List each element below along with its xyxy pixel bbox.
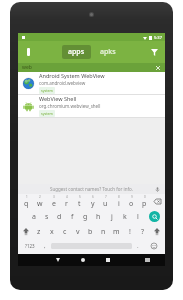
staticText: r bbox=[65, 199, 68, 209]
button[interactable]: 9 bbox=[125, 194, 138, 209]
staticText: org.chromium.webview_shell bbox=[39, 103, 101, 109]
staticText: e bbox=[52, 199, 56, 209]
button[interactable]: Voice input bbox=[153, 185, 161, 193]
button[interactable]: apks bbox=[94, 45, 122, 59]
staticText: t bbox=[78, 199, 81, 209]
button[interactable]: Clear search bbox=[154, 64, 162, 72]
button[interactable]: k bbox=[118, 209, 131, 224]
staticText: apps bbox=[68, 47, 85, 57]
staticText: f bbox=[71, 212, 74, 222]
button[interactable]: f bbox=[66, 209, 79, 224]
button[interactable]: Keyboard bbox=[135, 254, 160, 266]
staticText: j bbox=[111, 212, 113, 222]
button[interactable]: m bbox=[110, 224, 123, 239]
staticText: p bbox=[142, 199, 147, 209]
staticText: v bbox=[76, 227, 80, 237]
button[interactable]: WebView Shell bbox=[18, 95, 165, 117]
button[interactable]: x bbox=[45, 224, 58, 239]
staticText: o bbox=[129, 199, 134, 209]
staticText: WebView Shell bbox=[39, 95, 77, 102]
button[interactable]: , bbox=[39, 239, 51, 253]
button[interactable]: . bbox=[132, 239, 144, 253]
button[interactable]: n bbox=[97, 224, 110, 239]
staticText: c bbox=[63, 227, 67, 237]
staticText: s bbox=[45, 212, 49, 222]
button[interactable]: 5 bbox=[73, 194, 86, 209]
button[interactable]: ? bbox=[136, 224, 149, 239]
button[interactable]: l bbox=[131, 209, 144, 224]
staticText: w bbox=[37, 199, 43, 209]
button[interactable]: Search bbox=[145, 210, 163, 223]
button[interactable]: d bbox=[53, 209, 66, 224]
button[interactable]: 4 bbox=[60, 194, 73, 209]
button[interactable]: Shift bbox=[19, 224, 33, 239]
staticText: 5 bbox=[79, 195, 81, 199]
button[interactable]: Android System WebView bbox=[18, 72, 165, 94]
staticText: l bbox=[137, 212, 139, 222]
button[interactable]: 7 bbox=[99, 194, 112, 209]
button[interactable]: apps bbox=[62, 45, 91, 59]
button[interactable]: v bbox=[71, 224, 84, 239]
button[interactable]: Shift bbox=[149, 224, 164, 239]
button[interactable]: 3 bbox=[47, 194, 60, 209]
staticText: m bbox=[113, 227, 120, 237]
button[interactable]: Filter bbox=[147, 45, 161, 59]
staticText: x bbox=[50, 227, 54, 237]
button[interactable]: z bbox=[33, 224, 45, 239]
button[interactable]: b bbox=[84, 224, 97, 239]
staticText: . bbox=[137, 242, 139, 250]
staticText: 2 bbox=[39, 195, 41, 199]
button[interactable]: s bbox=[40, 209, 53, 224]
staticText: u bbox=[103, 199, 108, 209]
button[interactable]: 6 bbox=[86, 194, 99, 209]
staticText: g bbox=[83, 212, 88, 222]
staticText: i bbox=[118, 199, 120, 209]
button[interactable]: j bbox=[105, 209, 118, 224]
staticText: 9 bbox=[131, 195, 133, 199]
staticText: b bbox=[88, 227, 93, 237]
staticText: q bbox=[24, 199, 29, 209]
button[interactable]: ! bbox=[123, 224, 136, 239]
staticText: system bbox=[41, 111, 53, 116]
staticText: z bbox=[37, 227, 41, 237]
staticText: 1 bbox=[26, 195, 28, 199]
button[interactable]: c bbox=[58, 224, 71, 239]
staticText: ! bbox=[129, 227, 131, 237]
button[interactable]: Suggest contact names? Touch for info. bbox=[18, 184, 165, 194]
staticText: n bbox=[101, 227, 106, 237]
staticText: d bbox=[57, 212, 62, 222]
staticText: system bbox=[41, 88, 53, 93]
staticText: Android System WebView bbox=[39, 72, 105, 79]
button[interactable]: a bbox=[27, 209, 40, 224]
staticText: apks bbox=[100, 47, 116, 57]
staticText: 3 bbox=[53, 195, 55, 199]
button[interactable]: 8 bbox=[112, 194, 125, 209]
button[interactable]: ?123 bbox=[20, 239, 39, 253]
staticText: com.android.webview bbox=[39, 80, 86, 86]
staticText: 7 bbox=[105, 195, 107, 199]
staticText: y bbox=[91, 199, 95, 209]
staticText: Suggest contact names? Touch for info. bbox=[50, 186, 133, 192]
button[interactable]: Emoji bbox=[144, 239, 163, 253]
button[interactable]: 0 bbox=[138, 194, 151, 209]
staticText: 6 bbox=[92, 195, 94, 199]
button[interactable]: Menu bbox=[21, 45, 35, 59]
staticText: 5:37 bbox=[154, 35, 162, 40]
button[interactable]: Recent apps bbox=[95, 254, 120, 266]
staticText: , bbox=[44, 242, 46, 250]
staticText: ?123 bbox=[25, 243, 35, 249]
button[interactable]: h bbox=[92, 209, 105, 224]
button[interactable]: 2 bbox=[33, 194, 47, 209]
button[interactable]: Home bbox=[70, 254, 95, 266]
button[interactable]: Backspace bbox=[151, 194, 164, 209]
staticText: h bbox=[96, 212, 101, 222]
staticText: 8 bbox=[118, 195, 120, 199]
staticText: ? bbox=[141, 227, 145, 237]
button[interactable]: g bbox=[79, 209, 92, 224]
button[interactable]: 1 bbox=[19, 194, 33, 209]
staticText: a bbox=[32, 212, 36, 222]
staticText: 4 bbox=[66, 195, 68, 199]
staticText: k bbox=[123, 212, 127, 222]
button[interactable]: Back bbox=[45, 254, 70, 266]
